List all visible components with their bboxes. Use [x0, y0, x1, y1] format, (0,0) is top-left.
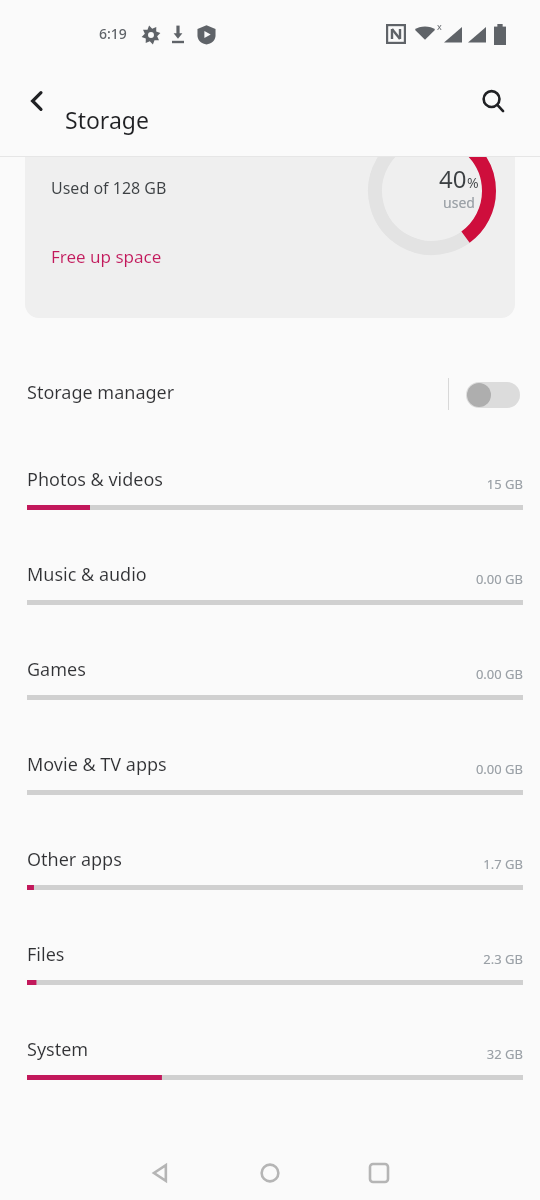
- staticText: Storage manager: [27, 380, 175, 405]
- staticText: %: [467, 173, 479, 192]
- staticText: 0.00 GB: [400, 760, 523, 778]
- staticText: System: [27, 1037, 89, 1062]
- staticText: Photos & videos: [27, 467, 163, 492]
- staticText: 15 GB: [400, 475, 523, 493]
- staticText: Used of 128 GB: [51, 177, 167, 199]
- staticText: 32 GB: [400, 1045, 523, 1063]
- staticText: 0.00 GB: [400, 665, 523, 683]
- staticText: Games: [27, 657, 86, 682]
- staticText: 2.3 GB: [400, 950, 523, 968]
- staticText: 0.00 GB: [400, 570, 523, 588]
- staticText: Files: [27, 942, 65, 967]
- staticText: Other apps: [27, 847, 122, 872]
- staticText: Movie & TV apps: [27, 752, 167, 777]
- button[interactable]: Back: [14, 78, 60, 124]
- staticText: Free up space: [51, 245, 162, 268]
- button[interactable]: Used of 128 GB: [25, 157, 515, 318]
- button[interactable]: Files: [0, 925, 540, 1020]
- button[interactable]: Home: [242, 1145, 298, 1200]
- staticText: 6:19: [99, 24, 127, 43]
- staticText: 1.7 GB: [400, 855, 523, 873]
- button[interactable]: Photos & videos: [0, 450, 540, 545]
- button[interactable]: System: [0, 1020, 540, 1115]
- button[interactable]: Other apps: [0, 830, 540, 925]
- button[interactable]: Music & audio: [0, 545, 540, 640]
- staticText: Music & audio: [27, 562, 147, 587]
- button[interactable]: Storage manager: [0, 355, 540, 431]
- button[interactable]: Movie & TV apps: [0, 735, 540, 830]
- staticText: x: [437, 20, 442, 32]
- button[interactable]: Games: [0, 640, 540, 735]
- staticText: Storage: [65, 104, 149, 135]
- button[interactable]: Storage manager toggle: [466, 382, 520, 408]
- staticText: 40: [439, 162, 467, 195]
- button[interactable]: Back: [133, 1145, 189, 1200]
- button[interactable]: Search: [470, 78, 516, 124]
- button[interactable]: Recents: [351, 1145, 407, 1200]
- staticText: used: [409, 193, 509, 212]
